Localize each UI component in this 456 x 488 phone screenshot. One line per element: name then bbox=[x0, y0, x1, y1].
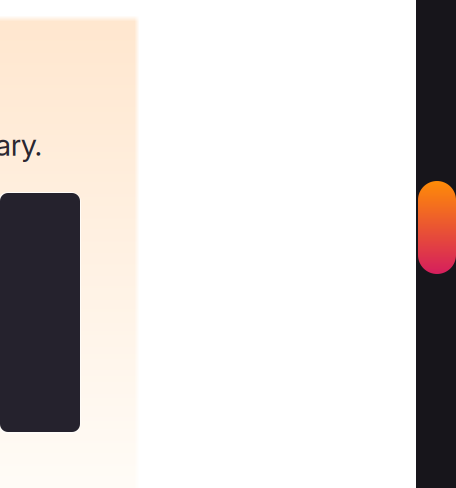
button[interactable]: ary. bbox=[0, 15, 140, 488]
button[interactable]: Next card bbox=[416, 0, 456, 488]
staticText: ary. bbox=[0, 126, 42, 163]
